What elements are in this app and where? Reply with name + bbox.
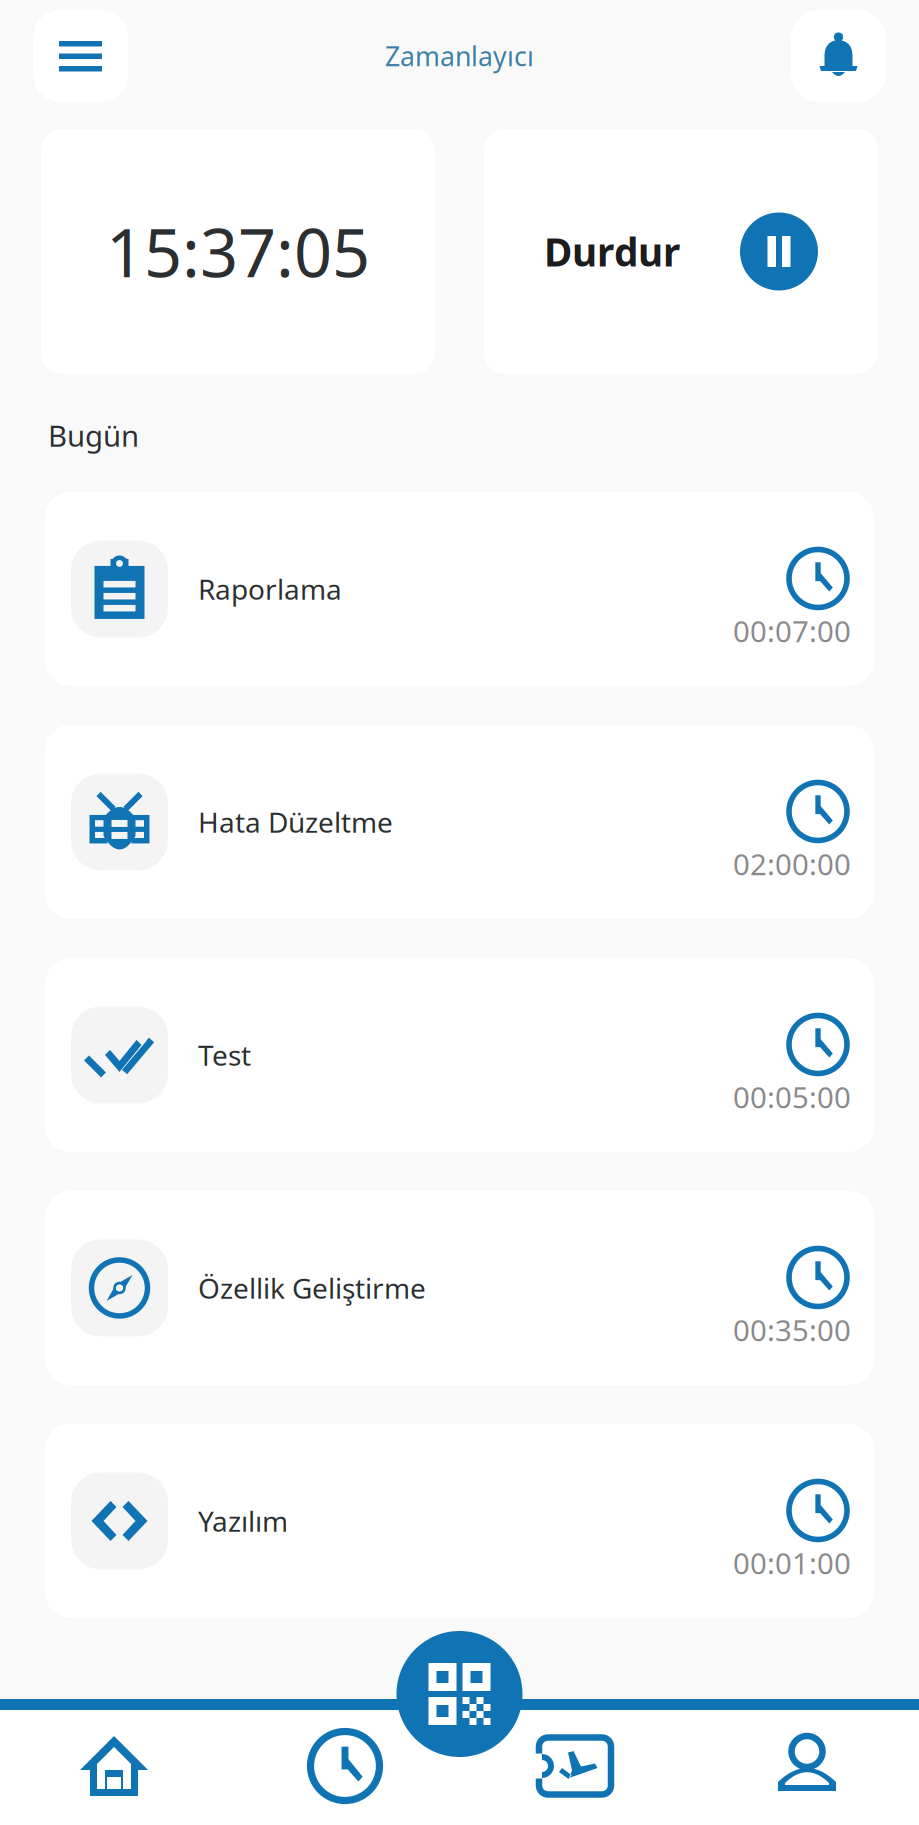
staticText: Durdur — [544, 226, 680, 277]
button[interactable]: Profile — [727, 1710, 887, 1822]
button[interactable]: Tickets — [495, 1710, 655, 1822]
button[interactable]: Menu — [33, 10, 128, 102]
button[interactable]: Home — [34, 1710, 194, 1822]
staticText: Raporlama — [198, 570, 342, 608]
button[interactable]: Test — [45, 958, 874, 1152]
staticText: Hata Düzeltme — [198, 803, 393, 841]
staticText: 15:37:05 — [106, 207, 370, 296]
button[interactable]: Notifications — [791, 10, 886, 102]
button[interactable]: Durdur — [484, 129, 878, 374]
button[interactable]: Özellik Geliştirme — [45, 1191, 874, 1385]
button[interactable]: Yazılım — [45, 1424, 874, 1618]
staticText: Özellik Geliştirme — [198, 1269, 426, 1307]
staticText: Bugün — [48, 416, 139, 455]
staticText: Test — [198, 1036, 251, 1074]
staticText: 00:07:00 — [733, 611, 851, 650]
staticText: 00:35:00 — [733, 1310, 851, 1349]
button[interactable]: Raporlama — [45, 492, 874, 686]
button[interactable]: Hata Düzeltme — [45, 725, 874, 919]
staticText: 00:01:00 — [733, 1543, 851, 1582]
staticText: 00:05:00 — [733, 1077, 851, 1116]
staticText: Yazılım — [198, 1502, 288, 1540]
button[interactable]: Timer — [265, 1710, 425, 1822]
staticText: 02:00:00 — [733, 844, 851, 883]
staticText: Zamanlayıcı — [385, 38, 534, 74]
button[interactable]: Scan QR code — [396, 1631, 522, 1757]
